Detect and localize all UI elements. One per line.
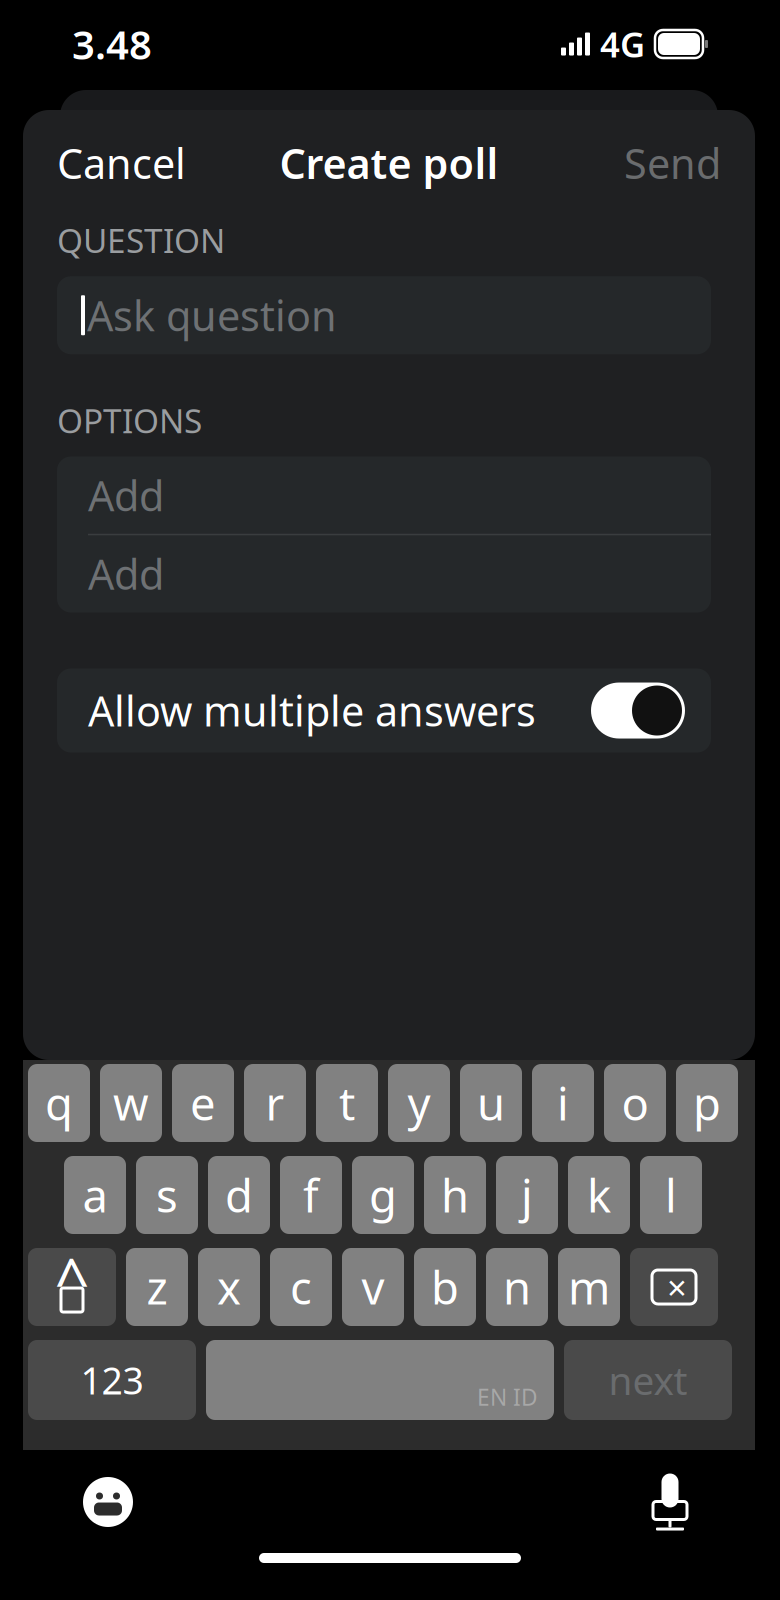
- button[interactable]: Emoji: [73, 1467, 143, 1537]
- staticText: next: [608, 1354, 687, 1406]
- button[interactable]: Send: [614, 126, 731, 200]
- staticText: r: [265, 1073, 284, 1133]
- button[interactable]: Add: [57, 457, 711, 534]
- button[interactable]: f: [280, 1156, 342, 1234]
- staticText: w: [113, 1073, 149, 1133]
- button[interactable]: t: [316, 1064, 378, 1142]
- staticText: OPTIONS: [57, 398, 202, 443]
- staticText: Cancel: [57, 136, 186, 190]
- staticText: Add: [88, 468, 164, 523]
- staticText: k: [587, 1165, 611, 1225]
- button[interactable]: g: [352, 1156, 414, 1234]
- staticText: x: [217, 1257, 241, 1317]
- button[interactable]: a: [64, 1156, 126, 1234]
- button[interactable]: r: [244, 1064, 306, 1142]
- button[interactable]: 123: [28, 1340, 196, 1420]
- staticText: EN ID: [477, 1382, 538, 1412]
- staticText: q: [45, 1073, 73, 1133]
- staticText: ^: [54, 1239, 89, 1321]
- button[interactable]: b: [414, 1248, 476, 1326]
- staticText: g: [369, 1165, 397, 1225]
- staticText: a: [82, 1165, 107, 1225]
- staticText: 4G: [600, 21, 645, 67]
- staticText: h: [441, 1165, 469, 1225]
- button[interactable]: z: [126, 1248, 188, 1326]
- staticText: n: [503, 1257, 531, 1317]
- button[interactable]: h: [424, 1156, 486, 1234]
- staticText: l: [665, 1165, 677, 1225]
- button[interactable]: x: [198, 1248, 260, 1326]
- staticText: m: [568, 1257, 610, 1317]
- button[interactable]: n: [486, 1248, 548, 1326]
- staticText: c: [290, 1257, 312, 1317]
- button[interactable]: j: [496, 1156, 558, 1234]
- staticText: j: [521, 1165, 533, 1225]
- staticText: f: [303, 1165, 319, 1225]
- staticText: u: [477, 1073, 505, 1133]
- staticText: t: [339, 1073, 355, 1133]
- staticText: z: [146, 1257, 167, 1317]
- staticText: Create poll: [279, 136, 498, 190]
- staticText: b: [431, 1257, 459, 1317]
- button[interactable]: Delete: [630, 1248, 718, 1326]
- button[interactable]: Dictation: [635, 1467, 705, 1537]
- button[interactable]: i: [532, 1064, 594, 1142]
- staticText: Send: [624, 136, 721, 190]
- button[interactable]: l: [640, 1156, 702, 1234]
- staticText: ×: [667, 1264, 687, 1310]
- button[interactable]: w: [100, 1064, 162, 1142]
- staticText: d: [225, 1165, 253, 1225]
- button[interactable]: Add: [57, 535, 711, 612]
- button[interactable]: o: [604, 1064, 666, 1142]
- staticText: y: [407, 1073, 430, 1133]
- button[interactable]: v: [342, 1248, 404, 1326]
- button[interactable]: Allow multiple answers: [57, 668, 711, 752]
- button[interactable]: m: [558, 1248, 620, 1326]
- button[interactable]: Ask question: [57, 276, 711, 354]
- staticText: Ask question: [87, 288, 337, 343]
- button[interactable]: k: [568, 1156, 630, 1234]
- button[interactable]: p: [676, 1064, 738, 1142]
- button[interactable]: c: [270, 1248, 332, 1326]
- button[interactable]: space: [206, 1340, 554, 1420]
- button[interactable]: y: [388, 1064, 450, 1142]
- button[interactable]: next: [564, 1340, 732, 1420]
- staticText: p: [693, 1073, 721, 1133]
- button[interactable]: s: [136, 1156, 198, 1234]
- button[interactable]: u: [460, 1064, 522, 1142]
- button[interactable]: Shift: [28, 1248, 116, 1326]
- button[interactable]: e: [172, 1064, 234, 1142]
- staticText: 3.48: [72, 17, 152, 70]
- staticText: QUESTION: [57, 218, 225, 262]
- button[interactable]: q: [28, 1064, 90, 1142]
- staticText: v: [361, 1257, 384, 1317]
- staticText: o: [621, 1073, 648, 1133]
- staticText: Allow multiple answers: [88, 683, 536, 738]
- staticText: s: [156, 1165, 178, 1225]
- staticText: Add: [88, 546, 164, 601]
- staticText: e: [190, 1073, 216, 1133]
- staticText: i: [557, 1073, 569, 1133]
- button[interactable]: d: [208, 1156, 270, 1234]
- staticText: 123: [80, 1355, 143, 1405]
- button[interactable]: Cancel: [47, 126, 196, 200]
